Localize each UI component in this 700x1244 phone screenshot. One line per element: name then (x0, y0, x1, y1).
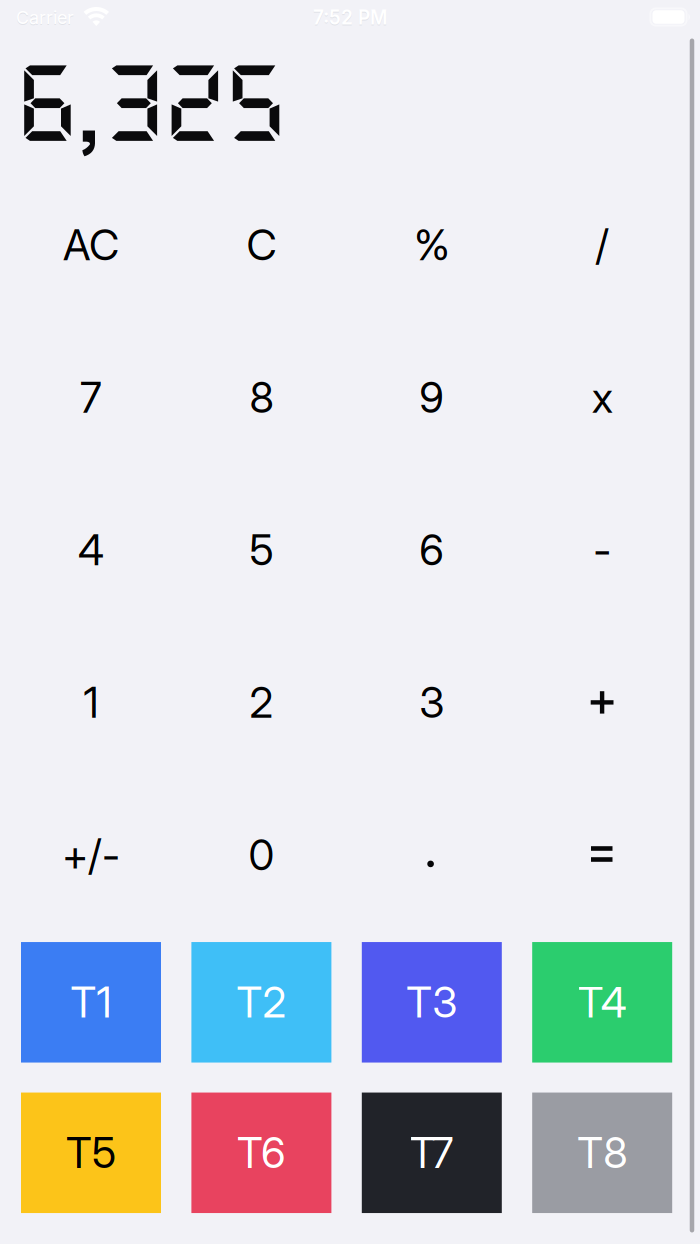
staticText: 4 (78, 525, 104, 575)
staticText: 1 (83, 677, 98, 728)
staticText: 7 (80, 372, 102, 423)
staticText: T8 (577, 1127, 627, 1178)
staticText: % (414, 220, 449, 270)
staticText: 8 (249, 372, 273, 423)
staticText: 0 (248, 830, 274, 880)
staticText: Carrier (16, 8, 74, 29)
staticText: 6 (419, 525, 444, 575)
staticText: 9 (419, 372, 444, 423)
staticText: C (246, 220, 276, 270)
staticText: 7:52 PM (313, 7, 387, 30)
staticText: / (595, 220, 609, 270)
staticText: 5 (249, 525, 273, 575)
staticText: AC (63, 220, 119, 270)
staticText: T6 (237, 1127, 286, 1178)
staticText: T1 (70, 977, 111, 1028)
staticText: x (592, 372, 613, 423)
staticText: - (593, 525, 611, 575)
staticText: +/- (62, 830, 120, 880)
staticText: Carrier (16, 7, 74, 28)
staticText: T2 (236, 977, 286, 1028)
staticText: 2 (249, 677, 273, 728)
staticText: 3 (419, 677, 444, 728)
staticText: T5 (66, 1127, 116, 1178)
staticText: 7:52 PM (313, 6, 387, 29)
staticText: T3 (406, 977, 457, 1028)
staticText: T4 (578, 977, 627, 1028)
staticText: T7 (410, 1127, 454, 1178)
